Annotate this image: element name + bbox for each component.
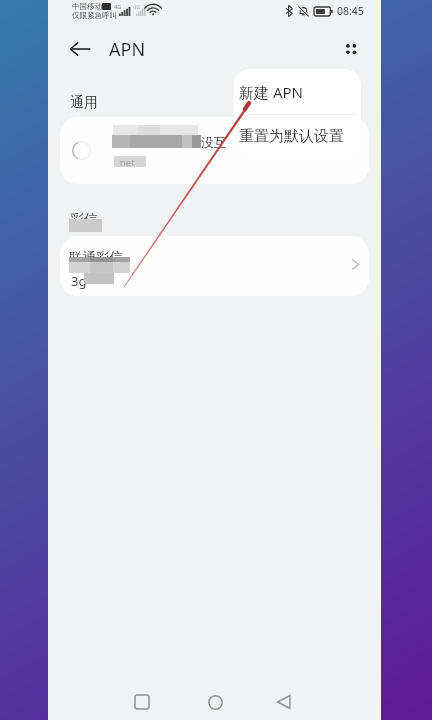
staticText: net <box>120 156 135 169</box>
button[interactable]: Back <box>64 33 96 65</box>
staticText: 联通彩信 <box>69 249 123 266</box>
staticText: 中国移动 <box>72 2 102 11</box>
staticText: 仅限紧急呼叫 <box>72 11 117 20</box>
staticText: 彩信 <box>70 211 98 229</box>
staticText: 没互 <box>201 135 226 151</box>
staticText: 3g <box>71 272 87 290</box>
button[interactable]: Recents <box>124 684 160 720</box>
staticText: 通用 <box>70 94 98 112</box>
button[interactable]: 联通彩信 <box>60 236 369 296</box>
staticText: 4G <box>133 3 141 10</box>
staticText: APN <box>109 37 146 62</box>
button[interactable]: 新建 APN <box>234 69 361 114</box>
staticText: 4G <box>114 3 122 10</box>
staticText: 08:45 <box>337 4 364 18</box>
button[interactable]: Back <box>266 684 302 720</box>
staticText: 新建 APN <box>239 82 303 102</box>
button[interactable]: 重置为默认设置 <box>234 115 361 158</box>
button[interactable]: More options <box>334 32 368 66</box>
button[interactable]: Home <box>197 684 233 720</box>
staticText: 重置为默认设置 <box>239 127 344 146</box>
button[interactable]: 没互 <box>60 117 369 184</box>
